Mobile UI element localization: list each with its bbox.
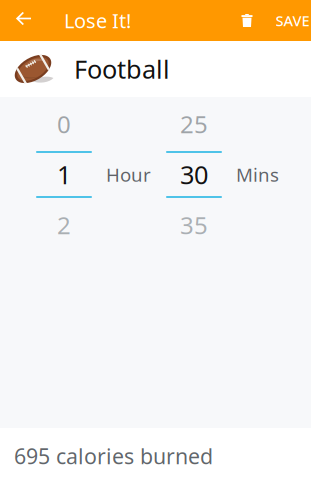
button[interactable]: Delete [220,0,274,41]
button[interactable]: 25 [166,97,222,151]
staticText: Hour [106,162,151,187]
button[interactable]: SAVE [274,0,311,41]
staticText: 30 [180,158,208,191]
button[interactable]: 2 [36,198,92,252]
staticText: 25 [180,108,208,140]
staticText: Mins [236,162,279,187]
staticText: Football [74,52,170,86]
staticText: 1 [57,158,71,191]
staticText: Lose It! [64,7,131,34]
button[interactable]: 0 [36,97,92,151]
staticText: SAVE [275,11,309,30]
staticText: 695 calories burned [14,442,213,470]
button[interactable]: Back [0,0,48,41]
staticText: 2 [57,209,71,241]
button[interactable]: 35 [166,198,222,252]
staticText: 0 [57,108,71,140]
staticText: 35 [180,209,208,241]
